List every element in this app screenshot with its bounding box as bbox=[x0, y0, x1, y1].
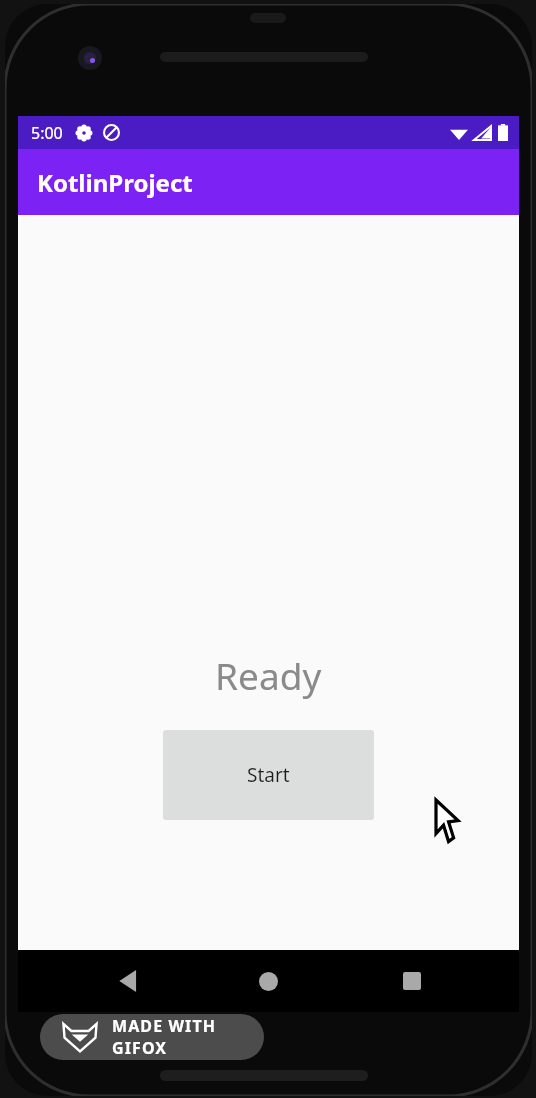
button[interactable]: Start bbox=[163, 730, 374, 820]
staticText: 5:00 bbox=[31, 122, 63, 144]
button[interactable]: Home bbox=[243, 956, 293, 1006]
button[interactable]: Recent apps bbox=[387, 956, 437, 1006]
staticText: KotlinProject bbox=[37, 166, 193, 199]
staticText: Ready bbox=[215, 650, 322, 700]
staticText: MADE WITH GIFOX bbox=[112, 1015, 264, 1059]
button[interactable]: Back bbox=[104, 956, 154, 1006]
staticText: Start bbox=[247, 762, 290, 788]
